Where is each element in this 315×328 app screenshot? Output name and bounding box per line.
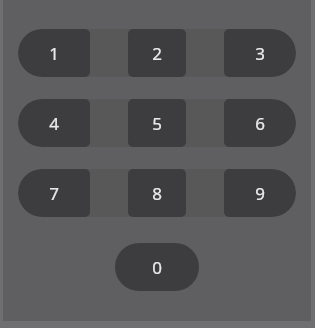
staticText: 9 xyxy=(255,182,265,205)
button[interactable]: 5 xyxy=(128,99,186,147)
button[interactable]: 4 xyxy=(18,99,90,147)
staticText: 0 xyxy=(152,256,162,279)
staticText: 5 xyxy=(152,112,162,135)
staticText: 8 xyxy=(152,182,162,205)
button[interactable]: 8 xyxy=(128,169,186,217)
staticText: 2 xyxy=(152,42,162,65)
staticText: 4 xyxy=(49,112,59,135)
button[interactable]: 9 xyxy=(224,169,296,217)
button[interactable]: 3 xyxy=(224,29,296,77)
button[interactable]: 1 xyxy=(18,29,90,77)
button[interactable]: 6 xyxy=(224,99,296,147)
staticText: 7 xyxy=(49,182,59,205)
staticText: 3 xyxy=(255,42,265,65)
button[interactable]: 0 xyxy=(115,243,199,291)
button[interactable]: 2 xyxy=(128,29,186,77)
button[interactable]: 7 xyxy=(18,169,90,217)
staticText: 6 xyxy=(255,112,265,135)
staticText: 1 xyxy=(49,42,59,65)
